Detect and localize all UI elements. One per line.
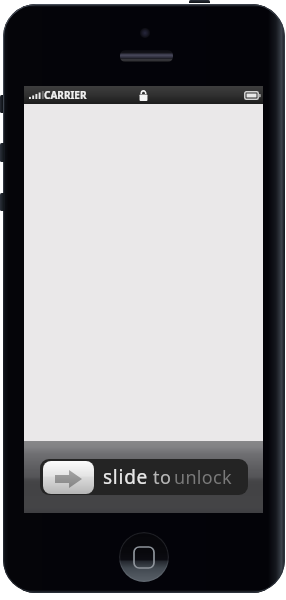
staticText: slide bbox=[103, 464, 149, 490]
staticText: to bbox=[153, 465, 172, 490]
staticText: CARRIER bbox=[44, 88, 87, 102]
staticText: unlock bbox=[174, 465, 232, 490]
button[interactable]: Home bbox=[119, 532, 169, 582]
button[interactable]: Slide to unlock bbox=[43, 461, 94, 494]
button[interactable]: slide bbox=[40, 459, 248, 495]
